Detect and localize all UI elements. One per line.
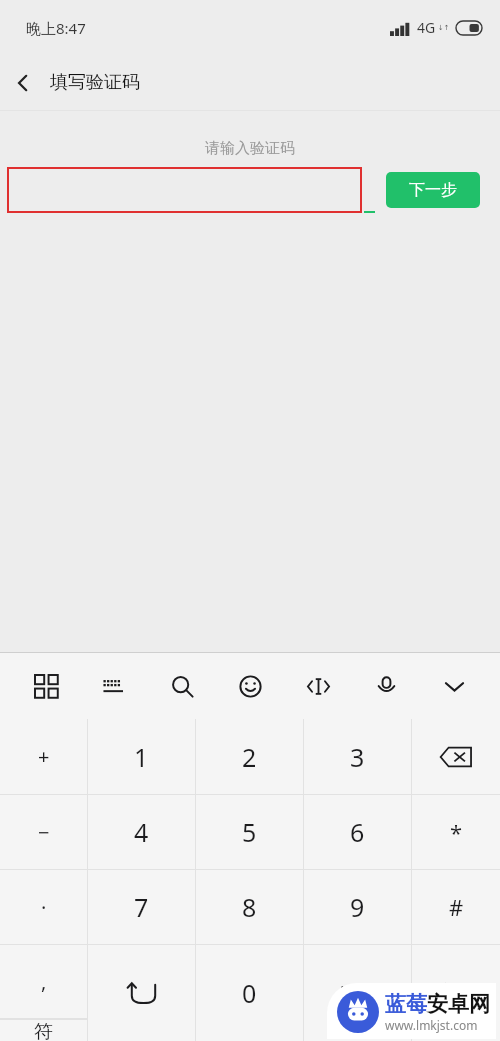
button[interactable]: 6 [304,795,411,869]
staticText: * [450,817,463,847]
button[interactable]: − [0,795,87,869]
button[interactable]: Apps [24,664,68,708]
staticText: 安卓网 [427,991,490,1017]
button[interactable]: · [0,870,87,944]
button[interactable]: Backspace [412,719,500,794]
staticText: 1 [134,740,149,774]
staticText: − [38,819,50,846]
staticText: 填写验证码 [50,71,140,94]
button[interactable]: Search [160,664,204,708]
button[interactable]: 下一步 [386,172,480,208]
button[interactable]: 5 [196,795,303,869]
button[interactable]: 符 [0,1020,87,1041]
staticText: 符 [34,1020,53,1041]
button[interactable]: * [412,795,500,869]
button[interactable]: 0 [196,945,303,1041]
button[interactable]: 2 [196,719,303,794]
staticText: 8 [242,890,257,924]
button[interactable]: Cursor [296,664,340,708]
other: Backspace [440,746,472,768]
button[interactable]: Space [304,945,411,1041]
button[interactable]: Voice [364,664,408,708]
button[interactable]: Emoji [228,664,272,708]
staticText: 0 [242,976,257,1010]
staticText: 晚上8:47 [26,18,86,38]
staticText: · [41,894,47,921]
button[interactable]: Undo [88,945,195,1041]
staticText: # [449,892,464,922]
staticText: ↓↑ [438,24,450,32]
button[interactable]: Keyboard [92,664,136,708]
button[interactable]: # [412,870,500,944]
button[interactable]: 4 [88,795,195,869]
button[interactable]: 9 [304,870,411,944]
staticText: 5 [242,815,257,849]
button[interactable]: 完成 [412,945,500,1041]
button[interactable]: 7 [88,870,195,944]
staticText: 3 [350,740,365,774]
staticText: + [38,743,50,770]
button[interactable]: 1 [88,719,195,794]
staticText: 9 [350,890,365,924]
staticText: , [41,968,47,995]
staticText: 下一步 [409,180,457,200]
button[interactable]: Hide keyboard [432,664,476,708]
button[interactable]: + [0,719,87,794]
staticText: 4 [134,815,149,849]
staticText: 6 [350,815,365,849]
button[interactable] [7,167,362,213]
button[interactable]: 8 [196,870,303,944]
staticText: www.lmkjst.com [385,1017,478,1033]
staticText: 请输入验证码 [0,139,500,158]
staticText: 2 [242,740,257,774]
staticText: 完成 [437,981,475,1005]
button[interactable]: 3 [304,719,411,794]
staticText: 7 [134,890,149,924]
button[interactable]: , [0,945,87,1018]
button[interactable]: Back [0,60,46,106]
staticText: 4G [417,18,436,37]
staticText: 蓝莓 [385,991,427,1017]
